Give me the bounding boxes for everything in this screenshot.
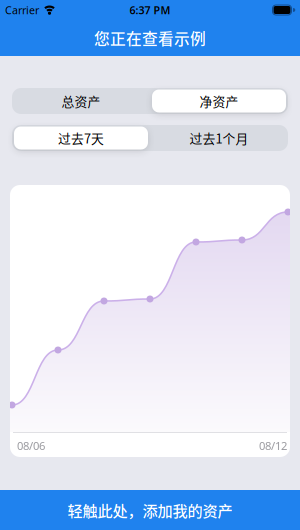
staticText: 您正在查看示例	[94, 27, 206, 49]
staticText: 总资产	[61, 92, 100, 110]
staticText: 净资产	[199, 92, 238, 110]
staticText: 08/12	[259, 438, 287, 453]
staticText: Carrier	[5, 3, 39, 17]
staticText: 08/06	[17, 438, 45, 453]
button[interactable]: 轻触此处，添加我的资产	[0, 490, 300, 530]
staticText: 6:37 PM	[129, 3, 170, 17]
button[interactable]: 净资产	[150, 88, 288, 114]
button[interactable]: 过去7天	[12, 125, 150, 151]
staticText: 过去1个月	[189, 129, 248, 147]
button[interactable]: 过去1个月	[150, 125, 288, 151]
button[interactable]: 总资产	[12, 88, 150, 114]
staticText: 轻触此处，添加我的资产	[67, 499, 232, 521]
staticText: 过去7天	[58, 129, 104, 147]
